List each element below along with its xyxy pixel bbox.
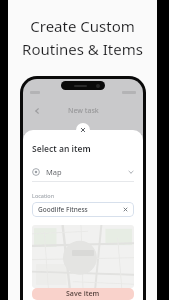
staticText: General (33, 140, 59, 150)
button[interactable]: Goodlife Fitness (32, 202, 134, 217)
staticText: Select an item (32, 143, 91, 155)
staticText: Create Custom (30, 16, 135, 36)
staticText: Location (32, 192, 55, 199)
button[interactable]: Map preview (32, 225, 134, 288)
staticText: New task (68, 106, 99, 116)
staticText: Save item (66, 289, 100, 299)
staticText: Routines & Items (22, 39, 143, 59)
other: Clear location (123, 207, 128, 212)
button[interactable]: Map (32, 167, 134, 181)
staticText: Goodlife Fitness (38, 205, 88, 214)
staticText: Map (46, 167, 62, 177)
button[interactable]: Save item (32, 288, 134, 300)
button[interactable]: Close (76, 123, 90, 137)
